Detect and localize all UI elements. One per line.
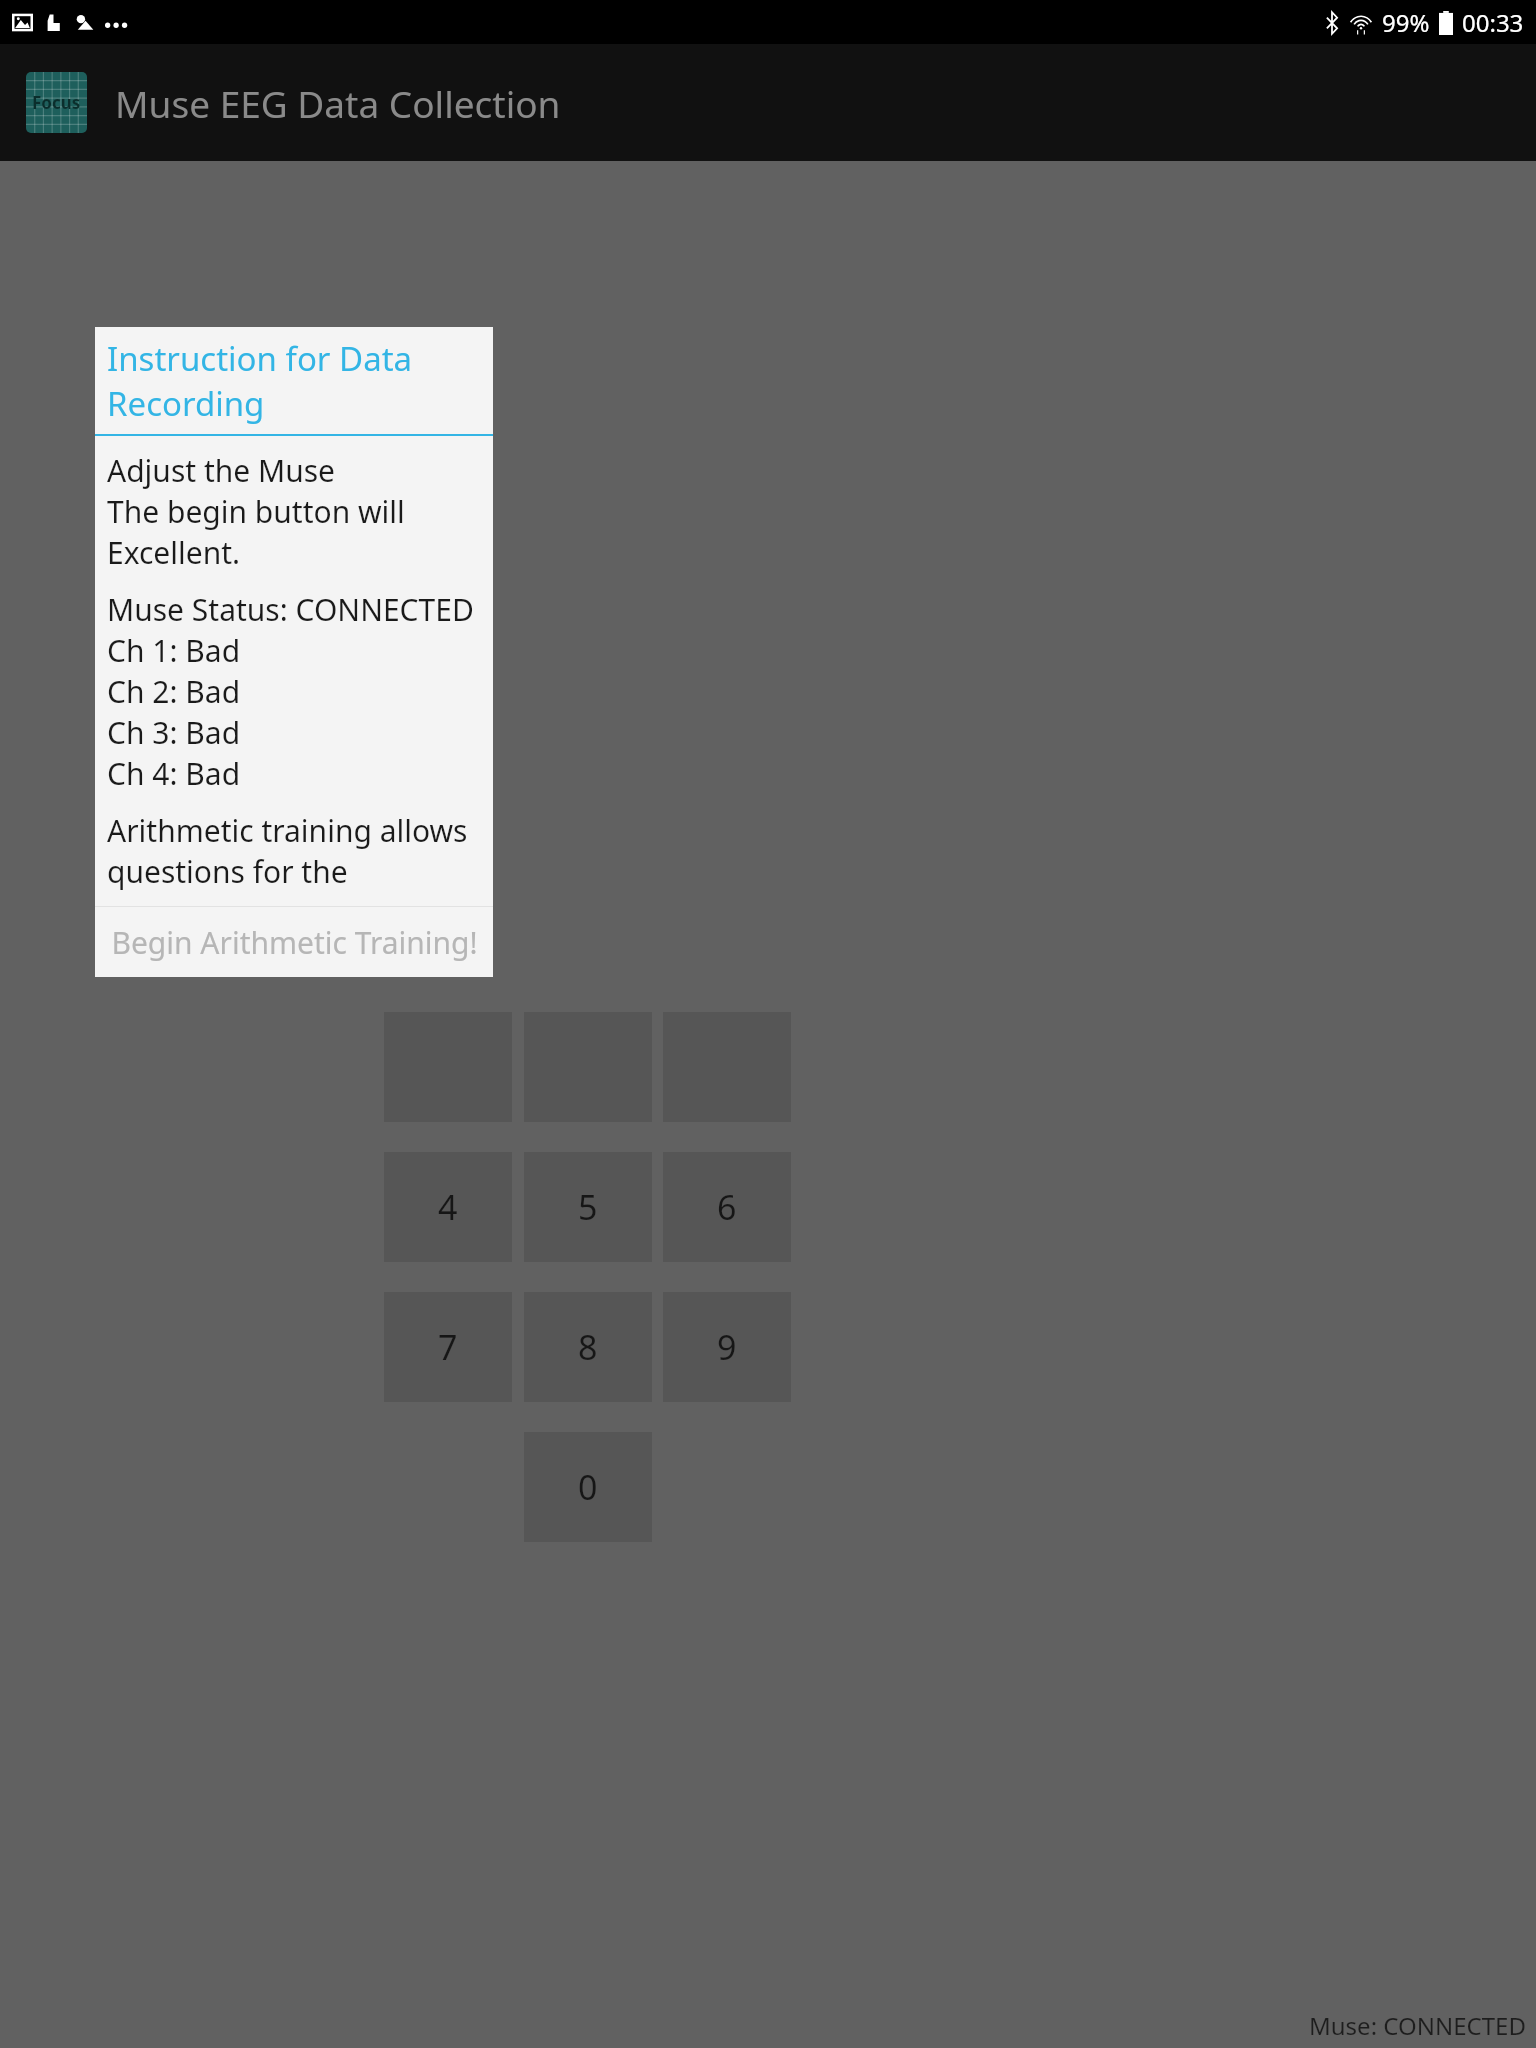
staticText: 8 [578, 1324, 598, 1370]
staticText: Focus [32, 91, 81, 114]
staticText: Adjust the Muse headband until all chann… [107, 450, 479, 491]
staticText: 9 [717, 1324, 737, 1370]
staticText: Muse Status: CONNECTED [107, 589, 474, 630]
staticText: 4 [438, 1184, 458, 1230]
staticText: Excellent. [107, 532, 241, 573]
button[interactable]: 6 [663, 1152, 791, 1262]
staticText: questions for the upcoming test! [107, 851, 479, 892]
staticText: Arithmetic training allows you to famili… [107, 810, 479, 851]
button[interactable]: 7 [384, 1292, 512, 1402]
staticText: 5 [578, 1184, 598, 1230]
staticText: 7 [438, 1324, 458, 1370]
staticText: Begin Arithmetic Training! [111, 922, 478, 963]
staticText: 6 [717, 1184, 737, 1230]
staticText: Ch 1: Bad [107, 630, 241, 671]
staticText: Muse: CONNECTED [1309, 2009, 1526, 2042]
button[interactable]: 9 [663, 1292, 791, 1402]
button[interactable]: 5 [524, 1152, 652, 1262]
staticText: 0 [578, 1464, 598, 1510]
staticText: 99% [1382, 6, 1430, 39]
staticText: The begin button will unlock when all ch… [107, 491, 479, 532]
staticText: Ch 4: Bad [107, 753, 241, 794]
button[interactable]: Begin Arithmetic Training! [95, 907, 493, 977]
staticText: Muse EEG Data Collection [115, 78, 561, 128]
button[interactable]: 4 [384, 1152, 512, 1262]
button[interactable]: 8 [524, 1292, 652, 1402]
staticText: Instruction for Data Recording [107, 336, 493, 426]
staticText: 00:33 [1462, 6, 1524, 39]
staticText: Ch 2: Bad [107, 671, 241, 712]
staticText: Ch 3: Bad [107, 712, 241, 753]
button[interactable]: 0 [524, 1432, 652, 1542]
